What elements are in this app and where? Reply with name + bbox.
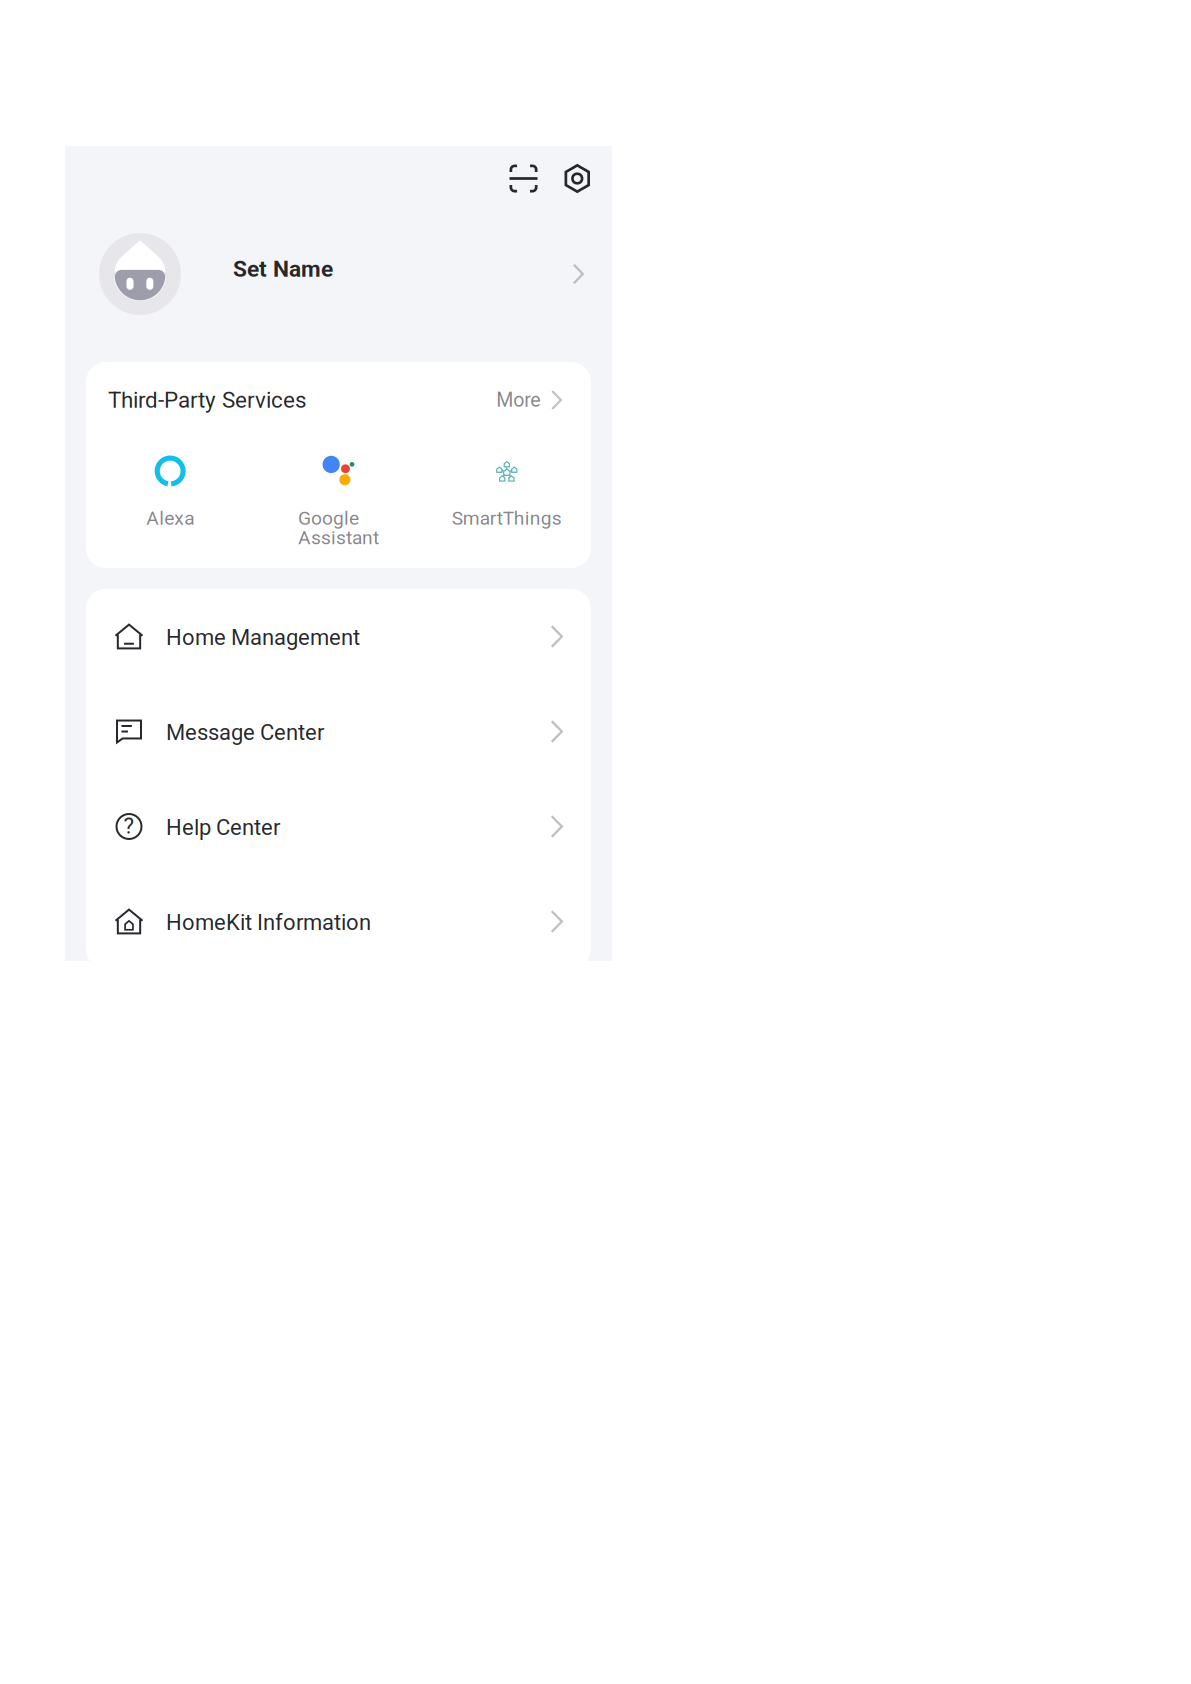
- button[interactable]: Settings: [557, 157, 597, 200]
- button[interactable]: SmartThings: [423, 438, 591, 568]
- button[interactable]: ?: [86, 779, 591, 874]
- staticText: Alexa: [146, 507, 194, 529]
- staticText: Set Name: [233, 256, 333, 282]
- button[interactable]: Set Name: [65, 223, 612, 325]
- staticText: SmartThings: [452, 507, 562, 529]
- staticText: HomeKit Information: [166, 910, 371, 935]
- button[interactable]: Home Management: [86, 589, 591, 684]
- button[interactable]: Scan: [502, 157, 544, 199]
- staticText: More: [496, 388, 540, 411]
- button[interactable]: Third-Party Services: [86, 362, 591, 438]
- button[interactable]: Google Assistant: [254, 438, 423, 568]
- staticText: Help Center: [166, 815, 280, 840]
- staticText: Google Assistant: [298, 507, 379, 549]
- button[interactable]: Message Center: [86, 684, 591, 779]
- staticText: Third-Party Services: [108, 387, 307, 413]
- button[interactable]: HomeKit Information: [86, 874, 591, 969]
- staticText: Home Management: [166, 625, 360, 650]
- staticText: Message Center: [166, 720, 324, 745]
- staticText: ?: [123, 813, 134, 839]
- button[interactable]: Alexa: [86, 438, 254, 568]
